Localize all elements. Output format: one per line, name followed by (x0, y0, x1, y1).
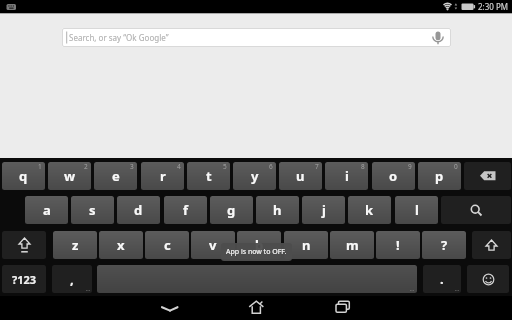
button[interactable] (472, 231, 511, 259)
staticText: t (206, 167, 212, 185)
staticText: 2:30 PM (478, 1, 509, 12)
button[interactable]: z (53, 231, 97, 259)
staticText: l (415, 201, 419, 219)
button[interactable]: b (237, 231, 281, 259)
button[interactable] (318, 296, 366, 320)
button[interactable]: c (145, 231, 189, 259)
button[interactable]: p (418, 162, 461, 190)
button[interactable]: n (284, 231, 328, 259)
staticText: 3 (130, 162, 134, 171)
button[interactable]: ?123 (2, 265, 46, 293)
button[interactable]: . (423, 265, 461, 293)
staticText: 1 (38, 162, 42, 171)
staticText: b (255, 236, 264, 254)
staticText: ?123 (12, 272, 37, 287)
button[interactable]: q (2, 162, 45, 190)
staticText: p (435, 167, 444, 185)
staticText: 5 (223, 162, 227, 171)
staticText: h (273, 201, 282, 219)
staticText: v (209, 236, 217, 254)
button[interactable]: a (25, 196, 68, 224)
staticText: z (72, 236, 79, 254)
button[interactable]: v (191, 231, 235, 259)
button[interactable] (441, 196, 511, 224)
staticText: o (389, 167, 398, 185)
button[interactable] (232, 296, 280, 320)
staticText: i (345, 167, 349, 185)
button[interactable]: t (187, 162, 230, 190)
staticText: … (86, 286, 90, 293)
button[interactable] (146, 296, 194, 320)
staticText: App is now to OFF. (226, 247, 287, 257)
button[interactable]: … (97, 265, 417, 293)
staticText: a (43, 201, 51, 219)
staticText: d (134, 201, 143, 219)
button[interactable]: r (141, 162, 184, 190)
button[interactable]: ? (422, 231, 466, 259)
button[interactable]: i (325, 162, 368, 190)
button[interactable] (464, 162, 511, 190)
staticText: u (296, 167, 305, 185)
button[interactable]: g (210, 196, 253, 224)
button[interactable]: , (52, 265, 92, 293)
staticText: s (89, 201, 96, 219)
staticText: … (455, 286, 459, 293)
staticText: q (19, 167, 28, 185)
button[interactable]: w (48, 162, 91, 190)
button[interactable]: x (99, 231, 143, 259)
button[interactable] (467, 265, 509, 293)
staticText: 6 (269, 162, 273, 171)
button[interactable]: u (279, 162, 322, 190)
button[interactable]: m (330, 231, 374, 259)
staticText: k (365, 201, 374, 219)
button[interactable]: l (395, 196, 438, 224)
staticText: n (302, 236, 311, 254)
staticText: j (322, 201, 326, 219)
staticText: c (164, 236, 171, 254)
staticText: r (160, 167, 166, 185)
staticText: 4 (177, 162, 181, 171)
button[interactable]: d (117, 196, 160, 224)
staticText: x (117, 236, 125, 254)
staticText: 8 (361, 162, 365, 171)
button[interactable] (2, 231, 46, 259)
staticText: e (112, 167, 120, 185)
staticText: 0 (454, 162, 458, 171)
staticText: 9 (408, 162, 412, 171)
button[interactable]: s (71, 196, 114, 224)
staticText: ! (396, 236, 400, 254)
button[interactable]: o (372, 162, 415, 190)
staticText: , (70, 270, 74, 288)
staticText: g (227, 201, 236, 219)
button[interactable]: f (164, 196, 207, 224)
button[interactable]: j (302, 196, 345, 224)
button[interactable]: e (94, 162, 137, 190)
staticText: ? (441, 236, 448, 254)
staticText: m (346, 236, 359, 254)
staticText: 7 (315, 162, 319, 171)
staticText: . (440, 270, 444, 288)
staticText: w (64, 167, 76, 185)
staticText: 2 (84, 162, 88, 171)
staticText: … (410, 286, 414, 293)
staticText: f (183, 201, 189, 219)
button[interactable]: k (348, 196, 391, 224)
staticText: y (251, 167, 259, 185)
button[interactable]: ! (376, 231, 420, 259)
button[interactable]: Search, or say “Ok Google” (62, 28, 451, 47)
staticText: Search, or say “Ok Google” (69, 32, 169, 43)
button[interactable]: h (256, 196, 299, 224)
button[interactable]: y (233, 162, 276, 190)
